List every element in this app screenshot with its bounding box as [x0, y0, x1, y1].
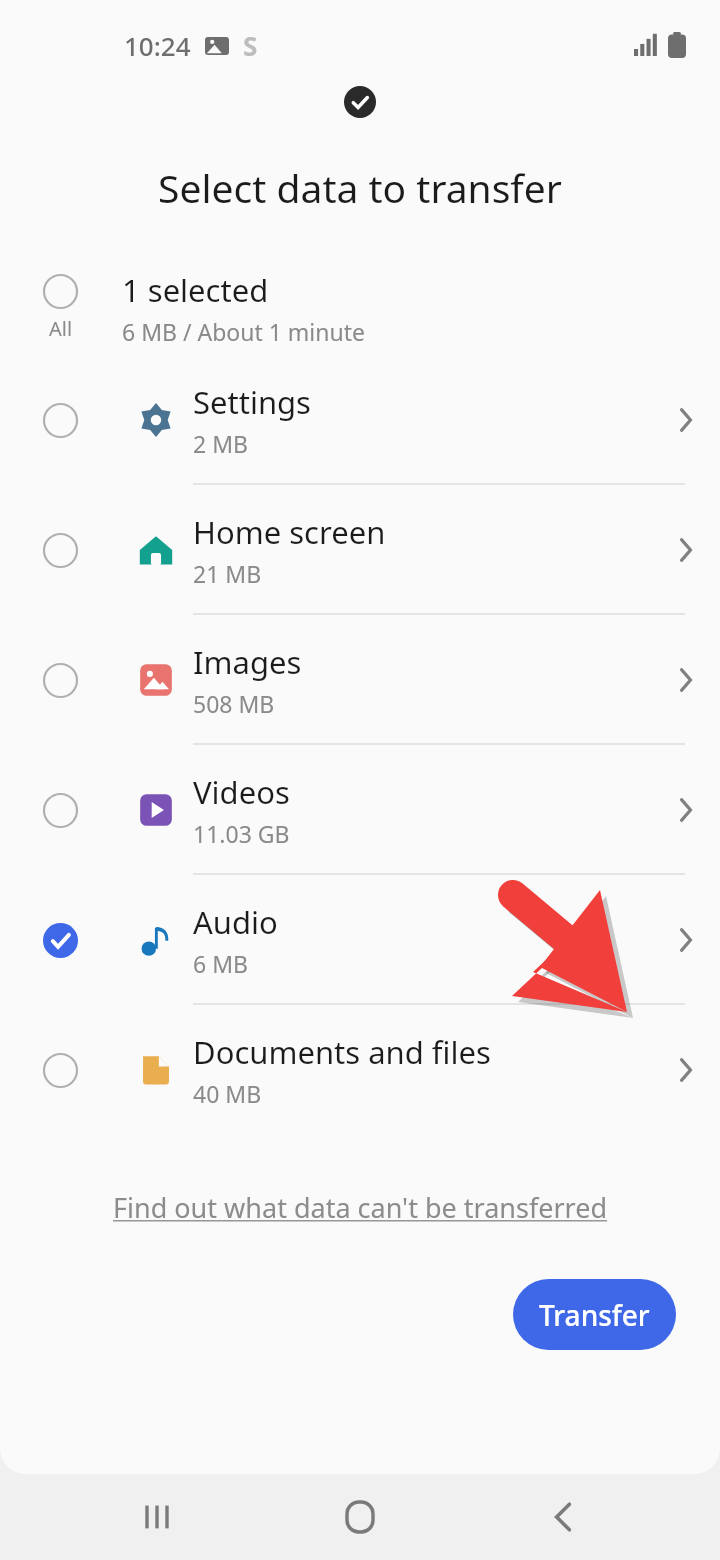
- staticText: Select data to transfer: [0, 161, 720, 214]
- button[interactable]: Open Audio details: [651, 875, 720, 1005]
- staticText: 6 MB: [193, 948, 248, 979]
- button[interactable]: Open Settings details: [651, 355, 720, 485]
- button[interactable]: Find out what data can't be transferred: [113, 1189, 608, 1226]
- staticText: 2 MB: [193, 428, 248, 459]
- staticText: 21 MB: [193, 558, 262, 589]
- staticText: 11.03 GB: [193, 818, 290, 849]
- button[interactable]: Documents and files: [0, 1005, 720, 1135]
- staticText: 1 selected: [122, 269, 269, 311]
- button[interactable]: Settings: [0, 355, 720, 485]
- button[interactable]: Open Videos details: [651, 745, 720, 875]
- staticText: 508 MB: [193, 688, 275, 719]
- button[interactable]: Audio: [0, 875, 720, 1005]
- staticText: Transfer: [539, 1296, 650, 1334]
- staticText: S: [243, 28, 258, 63]
- staticText: Documents and files: [193, 1031, 491, 1073]
- staticText: 10:24: [124, 28, 191, 63]
- button[interactable]: Open Home screen details: [651, 485, 720, 615]
- staticText: Audio: [193, 901, 278, 943]
- staticText: Settings: [193, 381, 311, 423]
- button[interactable]: All: [0, 261, 720, 355]
- button[interactable]: Home: [315, 1474, 405, 1560]
- staticText: 6 MB / About 1 minute: [122, 316, 365, 347]
- button[interactable]: Home screen: [0, 485, 720, 615]
- button[interactable]: Open Images details: [651, 615, 720, 745]
- button[interactable]: Open Documents and files details: [651, 1005, 720, 1135]
- button[interactable]: Recent apps: [113, 1474, 203, 1560]
- button[interactable]: Images: [0, 615, 720, 745]
- staticText: All: [49, 315, 73, 342]
- button[interactable]: Back: [518, 1474, 608, 1560]
- button[interactable]: Videos: [0, 745, 720, 875]
- button[interactable]: Transfer: [513, 1279, 676, 1350]
- staticText: 40 MB: [193, 1078, 262, 1109]
- staticText: Home screen: [193, 511, 386, 553]
- staticText: Images: [193, 641, 302, 683]
- staticText: Videos: [193, 771, 290, 813]
